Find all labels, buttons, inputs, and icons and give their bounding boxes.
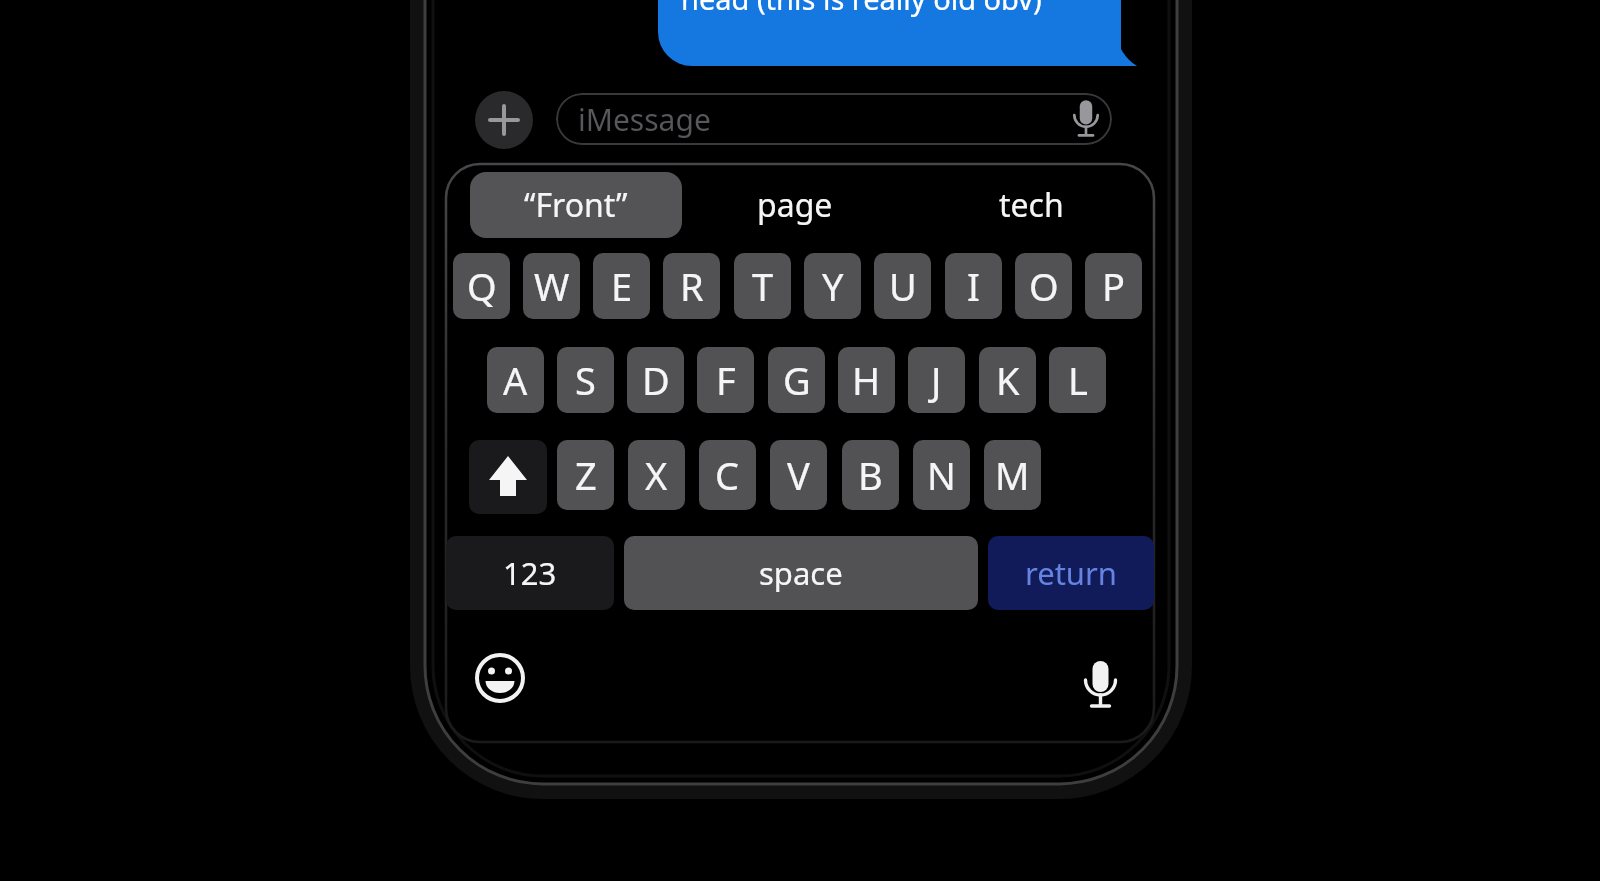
- button[interactable]: O: [1015, 253, 1072, 319]
- button[interactable]: W: [523, 253, 580, 319]
- staticText: space: [759, 552, 843, 594]
- button[interactable]: [472, 650, 528, 706]
- staticText: U: [889, 260, 917, 312]
- button[interactable]: B: [842, 440, 899, 510]
- button[interactable]: I: [945, 253, 1002, 319]
- button[interactable]: A: [487, 347, 544, 413]
- button[interactable]: [475, 91, 533, 149]
- button[interactable]: C: [699, 440, 756, 510]
- staticText: J: [931, 354, 942, 406]
- staticText: B: [858, 449, 883, 501]
- button[interactable]: U: [874, 253, 931, 319]
- button[interactable]: E: [593, 253, 650, 319]
- button[interactable]: K: [979, 347, 1036, 413]
- button[interactable]: H: [838, 347, 895, 413]
- button[interactable]: V: [770, 440, 827, 510]
- button[interactable]: N: [913, 440, 970, 510]
- staticText: I: [967, 260, 980, 312]
- staticText: N: [927, 449, 956, 501]
- staticText: K: [996, 354, 1020, 406]
- button[interactable]: L: [1049, 347, 1106, 413]
- button[interactable]: G: [768, 347, 825, 413]
- button[interactable]: X: [628, 440, 685, 510]
- staticText: P: [1102, 260, 1125, 312]
- button[interactable]: page: [710, 172, 880, 238]
- button[interactable]: T: [734, 253, 791, 319]
- button[interactable]: tech: [946, 172, 1116, 238]
- button[interactable]: F: [697, 347, 754, 413]
- staticText: H: [852, 354, 881, 406]
- staticText: D: [642, 354, 670, 406]
- button[interactable]: S: [557, 347, 614, 413]
- staticText: tech: [999, 183, 1064, 227]
- staticText: E: [611, 260, 633, 312]
- staticText: T: [752, 260, 774, 312]
- staticText: G: [783, 354, 811, 406]
- button[interactable]: J: [908, 347, 965, 413]
- staticText: iMessage: [578, 99, 711, 140]
- staticText: Q: [467, 260, 497, 312]
- staticText: X: [645, 449, 668, 501]
- staticText: return: [1025, 552, 1117, 594]
- staticText: L: [1068, 354, 1088, 406]
- staticText: R: [680, 260, 704, 312]
- staticText: O: [1029, 260, 1059, 312]
- staticText: Y: [822, 260, 844, 312]
- button[interactable]: D: [627, 347, 684, 413]
- staticText: V: [787, 449, 810, 501]
- button[interactable]: “Front”: [470, 172, 682, 238]
- staticText: A: [503, 354, 528, 406]
- staticText: S: [575, 354, 596, 406]
- button[interactable]: R: [663, 253, 720, 319]
- staticText: page: [757, 183, 833, 227]
- staticText: M: [995, 449, 1030, 501]
- button[interactable]: M: [984, 440, 1041, 510]
- staticText: C: [715, 449, 740, 501]
- staticText: head (this is really old obv): [681, 0, 1042, 18]
- button[interactable]: space: [624, 536, 978, 610]
- button[interactable]: [469, 440, 547, 514]
- button[interactable]: P: [1085, 253, 1142, 319]
- button[interactable]: Z: [557, 440, 614, 510]
- button[interactable]: return: [988, 536, 1154, 610]
- button[interactable]: Q: [453, 253, 510, 319]
- staticText: W: [534, 260, 570, 312]
- staticText: Z: [575, 449, 597, 501]
- staticText: 123: [503, 552, 557, 594]
- button[interactable]: [1072, 652, 1130, 716]
- button[interactable]: iMessage: [556, 93, 1112, 145]
- staticText: “Front”: [524, 183, 628, 227]
- staticText: F: [716, 354, 736, 406]
- button[interactable]: 123: [446, 536, 614, 610]
- button[interactable]: Y: [804, 253, 861, 319]
